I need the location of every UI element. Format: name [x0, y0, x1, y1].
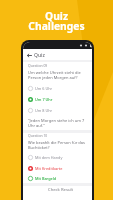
staticText: Wie bezahlt die Person für das Buchticke… [28, 140, 88, 150]
staticText: Mit Bargeld [35, 176, 57, 181]
staticText: Quiz Challenges [28, 9, 85, 33]
staticText: Mit Kreditkarte [35, 166, 63, 171]
button[interactable]: Mit Bargeld [28, 174, 88, 183]
staticText: Question 10 [28, 133, 48, 138]
button[interactable]: Mit Kreditkarte [28, 163, 88, 174]
staticText: Mit dem Handy [35, 155, 63, 160]
button[interactable]: Um 7 Uhr [28, 94, 88, 105]
staticText: Um 6 Uhr [35, 86, 53, 91]
button[interactable]: Mit dem Handy [28, 152, 88, 163]
staticText: Um 7 Uhr [35, 97, 53, 102]
staticText: Um welche Uhrzeit steht die Person jeden… [28, 70, 88, 80]
button[interactable]: Check Result [42, 186, 80, 194]
staticText: Quiz [34, 52, 45, 59]
staticText: Check Result [48, 187, 74, 193]
staticText: Um 8 Uhr [35, 108, 53, 113]
staticText: “Jeden Morgen stehe ich um 7 Uhr auf.” [28, 118, 88, 128]
staticText: Question 09 [28, 63, 48, 68]
button[interactable]: Um 8 Uhr [28, 105, 88, 116]
button[interactable]: Um 6 Uhr [28, 83, 88, 94]
button[interactable]: Back [25, 51, 33, 59]
